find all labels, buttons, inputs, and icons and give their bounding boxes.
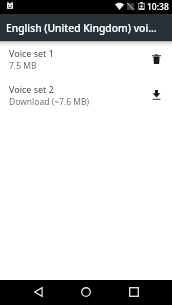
button[interactable]: Download xyxy=(143,77,169,113)
button[interactable]: Home xyxy=(71,279,101,304)
staticText: Voice set 2 xyxy=(9,83,54,95)
staticText: 7.5 MB xyxy=(9,60,37,72)
button[interactable]: Voice set 1 xyxy=(0,41,172,77)
button[interactable]: Delete xyxy=(143,41,169,77)
button[interactable]: Voice set 2 xyxy=(0,77,172,113)
staticText: Download (~7.6 MB) xyxy=(9,96,90,108)
button[interactable]: Back xyxy=(23,279,53,304)
staticText: 10:38 xyxy=(147,1,169,13)
button[interactable]: English (United Kingdom) voi… xyxy=(0,14,172,41)
staticText: English (United Kingdom) voi… xyxy=(6,21,157,35)
staticText: Voice set 1 xyxy=(9,47,54,59)
button[interactable]: Recent apps xyxy=(119,279,149,304)
